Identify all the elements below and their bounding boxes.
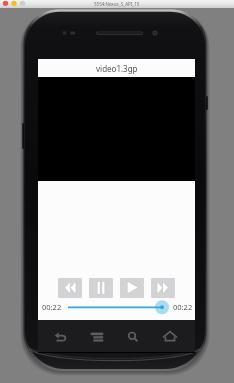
button[interactable]: Menu: [81, 323, 113, 351]
button[interactable]: Search: [117, 323, 149, 351]
button[interactable]: Back: [45, 323, 77, 351]
staticText: 00:22: [42, 302, 62, 312]
button[interactable]: Fast forward: [151, 278, 175, 298]
button[interactable]: Home: [154, 323, 186, 351]
staticText: 5554:Nexus_S_API_15: [94, 1, 140, 7]
staticText: video1.3gp: [96, 63, 138, 74]
staticText: 00:22: [173, 302, 193, 312]
button[interactable]: Pause: [89, 278, 113, 298]
button[interactable]: [64, 299, 176, 315]
button[interactable]: Rewind: [58, 278, 82, 298]
button[interactable]: Play: [120, 278, 144, 298]
